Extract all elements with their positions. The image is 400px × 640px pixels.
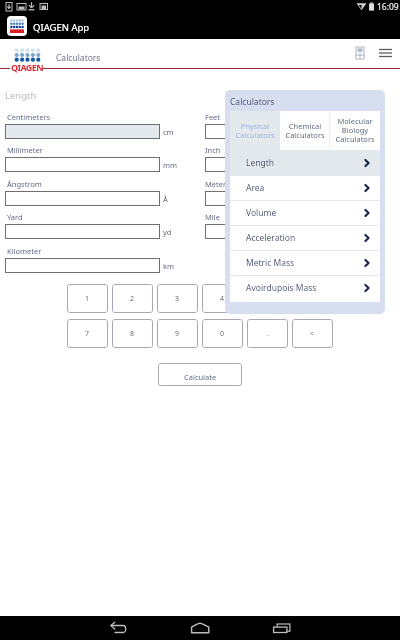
button[interactable]: [5, 157, 160, 172]
button[interactable]: <: [292, 319, 333, 348]
staticText: Volume: [246, 207, 277, 219]
staticText: m: [363, 194, 371, 204]
button[interactable]: .: [247, 319, 288, 348]
staticText: Å: [163, 194, 168, 204]
staticText: Calculators: [230, 96, 275, 108]
staticText: cm: [163, 127, 174, 137]
button[interactable]: 4: [202, 284, 243, 313]
button[interactable]: [5, 124, 160, 139]
button[interactable]: Molecular Biology Calculators: [329, 111, 380, 150]
button[interactable]: [205, 124, 360, 139]
staticText: 16:09: [377, 1, 399, 13]
button[interactable]: 8: [112, 319, 153, 348]
button[interactable]: 6: [292, 284, 333, 313]
staticText: 5: [265, 294, 270, 304]
staticText: 9: [175, 329, 180, 339]
button[interactable]: Menu: [377, 44, 395, 62]
staticText: Calculators: [56, 52, 101, 64]
staticText: Chemical Calculators: [285, 121, 325, 141]
button[interactable]: 9: [157, 319, 198, 348]
staticText: 2: [130, 294, 135, 304]
staticText: QIAGEN App: [33, 21, 90, 34]
button[interactable]: Volume: [230, 200, 380, 225]
staticText: 4: [220, 294, 225, 304]
staticText: mm: [163, 160, 178, 170]
button[interactable]: Home: [180, 616, 220, 640]
button[interactable]: [205, 157, 360, 172]
staticText: Physical Calculators: [235, 121, 275, 141]
button[interactable]: Recents: [264, 616, 304, 640]
button[interactable]: 1: [67, 284, 108, 313]
button[interactable]: Area: [230, 175, 380, 200]
staticText: yd: [163, 227, 172, 237]
button[interactable]: [5, 191, 160, 206]
staticText: .: [267, 329, 269, 339]
button[interactable]: Physical Calculators: [230, 111, 280, 150]
button[interactable]: 7: [67, 319, 108, 348]
staticText: Acceleration: [246, 232, 296, 244]
staticText: Kilometer: [7, 246, 42, 256]
staticText: Ångstrom: [7, 179, 42, 189]
staticText: mi: [363, 227, 372, 237]
staticText: km: [163, 261, 175, 271]
staticText: Centimeters: [7, 112, 51, 122]
button[interactable]: 5: [247, 284, 288, 313]
staticText: Feet: [205, 112, 221, 122]
staticText: Avoirdupois Mass: [246, 282, 317, 294]
staticText: 6: [310, 294, 315, 304]
staticText: Metric Mass: [246, 257, 295, 269]
button[interactable]: 3: [157, 284, 198, 313]
staticText: Millimeter: [7, 145, 43, 155]
button[interactable]: QIAGEN App: [0, 13, 400, 39]
button[interactable]: 2: [112, 284, 153, 313]
staticText: Length: [5, 89, 37, 102]
staticText: Area: [246, 182, 265, 194]
staticText: 0: [220, 329, 225, 339]
staticText: ft: [363, 127, 369, 137]
staticText: 1: [85, 294, 90, 304]
staticText: 7: [85, 329, 90, 339]
staticText: Meter: [205, 179, 227, 189]
staticText: Length: [246, 157, 275, 169]
staticText: QIAGEN: [11, 61, 43, 73]
staticText: Calculate: [184, 372, 217, 382]
staticText: 3: [175, 294, 180, 304]
button[interactable]: Chemical Calculators: [280, 111, 329, 150]
button[interactable]: Length: [230, 150, 380, 175]
staticText: Yard: [7, 212, 23, 222]
staticText: in: [363, 160, 370, 170]
button[interactable]: [5, 258, 160, 273]
button[interactable]: Acceleration: [230, 225, 380, 250]
staticText: Mile: [205, 212, 220, 222]
staticText: Inch: [205, 145, 221, 155]
button[interactable]: [5, 224, 160, 239]
button[interactable]: Calculator: [351, 44, 369, 62]
button[interactable]: Calculate: [158, 363, 242, 386]
staticText: Molecular Biology Calculators: [335, 116, 375, 145]
button[interactable]: 0: [202, 319, 243, 348]
button[interactable]: [205, 224, 360, 239]
button[interactable]: [205, 191, 360, 206]
staticText: 8: [130, 329, 135, 339]
staticText: <: [310, 329, 315, 339]
button[interactable]: Avoirdupois Mass: [230, 275, 380, 300]
button[interactable]: Back: [100, 616, 140, 640]
button[interactable]: Metric Mass: [230, 250, 380, 275]
